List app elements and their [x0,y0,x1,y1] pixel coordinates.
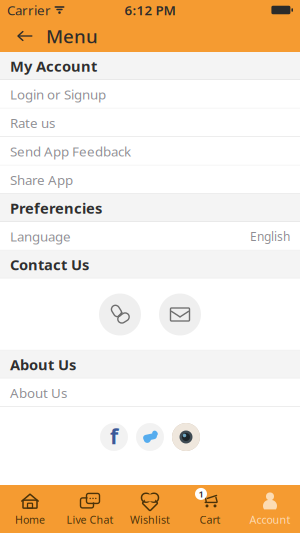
staticText: Login or Signup [10,85,106,103]
staticText: Carrier [7,1,51,19]
staticText: 6:12 PM [124,1,175,19]
button[interactable]: Call us [99,293,141,335]
staticText: English [250,228,290,244]
staticText: Home [15,512,45,527]
button[interactable]: Rate us [0,108,300,137]
staticText: Language [10,227,71,245]
button[interactable]: Twitter [136,423,164,451]
staticText: 1 [198,488,203,500]
staticText: Contact Us [10,255,89,274]
button[interactable]: Language [0,222,300,250]
staticText: About Us [10,355,76,374]
staticText: Send App Feedback [10,142,131,160]
button[interactable]: Live Chat [60,487,120,531]
button[interactable]: Email us [159,293,201,335]
staticText: Account [249,512,290,527]
staticText: About Us [10,384,67,402]
staticText: Menu [46,24,98,48]
button[interactable]: Home [0,487,60,531]
staticText: Live Chat [66,512,113,527]
button[interactable]: Facebook [100,423,128,451]
button[interactable]: About Us [0,378,300,407]
staticText: Share App [10,171,73,189]
button[interactable]: Send App Feedback [0,137,300,165]
button[interactable]: Login or Signup [0,80,300,108]
button[interactable]: Share App [0,165,300,194]
button[interactable]: Back [10,20,40,52]
staticText: My Account [10,56,97,76]
staticText: Cart [199,512,220,527]
button[interactable]: Account [240,487,300,531]
staticText: Rate us [10,114,55,132]
staticText: Preferencies [10,198,102,218]
staticText: f [110,422,118,450]
button[interactable]: Wishlist [120,487,180,531]
button[interactable]: Instagram [172,423,200,451]
button[interactable]: 1 [180,487,240,531]
staticText: Wishlist [130,512,170,527]
